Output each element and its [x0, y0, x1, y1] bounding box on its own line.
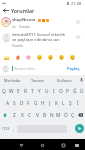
staticText: Yanıtla: [12, 43, 23, 48]
staticText: O: [59, 88, 63, 95]
staticText: K: [55, 100, 58, 107]
button[interactable]: Back: [16, 140, 26, 150]
button[interactable]: Y: [36, 85, 43, 97]
button[interactable]: Profile photo: [1, 17, 11, 27]
staticText: .: [69, 126, 71, 132]
staticText: ?123: [2, 126, 10, 131]
button[interactable]: Profile photo: [2, 65, 9, 72]
staticText: Q: [2, 88, 6, 95]
button[interactable]: O: [57, 85, 64, 97]
button[interactable]: D: [18, 97, 25, 109]
staticText: Ö: [64, 112, 68, 119]
button[interactable]: C: [26, 109, 34, 121]
button[interactable]: Ğ: [71, 85, 78, 97]
button[interactable]: Ş: [67, 97, 74, 109]
staticText: Yorumlar: [11, 7, 35, 14]
staticText: S: [13, 100, 16, 107]
staticText: C: [28, 112, 32, 119]
button[interactable]: Hide keyboard: [73, 141, 81, 149]
button[interactable]: Shift: [0, 109, 10, 121]
staticText: F: [27, 100, 30, 107]
button[interactable]: P: [64, 85, 71, 97]
button[interactable]: X: [18, 109, 26, 121]
button[interactable]: Quick reaction: [23, 53, 34, 62]
button[interactable]: I: [50, 85, 57, 97]
staticText: Ğ: [73, 88, 77, 95]
staticText: Ş: [69, 100, 72, 107]
button[interactable]: Quick reaction: [1, 53, 12, 62]
staticText: V: [36, 112, 39, 119]
button[interactable]: Home: [37, 140, 47, 150]
staticText: ,: [13, 126, 15, 132]
button[interactable]: Recent apps: [58, 140, 68, 150]
button[interactable]: Ç: [69, 109, 76, 121]
button[interactable]: Kullanıcı: [51, 75, 77, 85]
button[interactable]: Quick reaction: [34, 53, 45, 62]
staticText: W: [9, 88, 14, 95]
button[interactable]: ?123: [0, 121, 11, 136]
button[interactable]: Paylaş: [64, 64, 83, 73]
staticText: M: [56, 112, 61, 119]
button[interactable]: B: [41, 109, 48, 121]
button[interactable]: S: [11, 97, 18, 109]
button[interactable]: R: [22, 85, 29, 97]
button[interactable]: J: [46, 97, 53, 109]
staticText: T: [31, 88, 34, 95]
button[interactable]: Quick reaction: [45, 53, 56, 62]
staticText: J: [49, 100, 51, 107]
button[interactable]: A: [4, 97, 11, 109]
staticText: Y: [38, 88, 41, 95]
staticText: A: [6, 100, 10, 107]
button[interactable]: Quick reaction: [67, 53, 78, 62]
staticText: H: [41, 100, 45, 107]
button[interactable]: Backspace: [76, 109, 85, 121]
button[interactable]: Send: [73, 121, 85, 136]
button[interactable]: Voice input: [77, 75, 85, 85]
button[interactable]: Like: [75, 19, 81, 25]
button[interactable]: N: [48, 109, 55, 121]
button[interactable]: Tamam: [25, 75, 51, 85]
staticText: İ: [77, 100, 79, 107]
button[interactable]: V: [34, 109, 41, 121]
staticText: G: [34, 100, 38, 107]
staticText: Ç: [71, 112, 75, 119]
button[interactable]: Merhaba: [0, 75, 25, 85]
button[interactable]: G: [32, 97, 39, 109]
button[interactable]: Profile photo: [2, 33, 11, 42]
staticText: Paylaş: [67, 66, 80, 71]
button[interactable]: L: [60, 97, 67, 109]
staticText: denizbt8911 Sonsuf etkinlik ve paylaşın …: [12, 32, 70, 42]
staticText: U: [45, 88, 49, 95]
staticText: Ü: [80, 88, 84, 95]
button[interactable]: T: [29, 85, 36, 97]
button[interactable]: F: [25, 97, 32, 109]
staticText: shopNicoor: [12, 17, 36, 23]
button[interactable]: E: [15, 85, 22, 97]
button[interactable]: H: [39, 97, 46, 109]
staticText: I: [53, 88, 55, 95]
button[interactable]: Quick reaction: [12, 53, 23, 62]
staticText: Tamam: [31, 78, 45, 83]
staticText: 21:08: [71, 1, 82, 6]
button[interactable]: Ü: [78, 85, 85, 97]
button[interactable]: Quick reaction: [56, 53, 67, 62]
staticText: R: [24, 88, 27, 95]
staticText: N: [50, 112, 54, 119]
staticText: Kullanıcı: [57, 78, 72, 83]
staticText: Z: [13, 112, 16, 119]
button[interactable]: Back: [0, 6, 11, 15]
button[interactable]: W: [8, 85, 15, 97]
button[interactable]: Comma: [11, 121, 17, 136]
button[interactable]: Q: [0, 85, 8, 97]
button[interactable]: Ö: [62, 109, 69, 121]
staticText: B: [43, 112, 47, 119]
button[interactable]: M: [55, 109, 62, 121]
button[interactable]: K: [53, 97, 60, 109]
button[interactable]: İ: [74, 97, 81, 109]
staticText: E: [17, 88, 20, 95]
button[interactable]: Period: [67, 121, 73, 136]
button[interactable]: Like: [75, 34, 81, 40]
button[interactable]: U: [43, 85, 50, 97]
button[interactable]: Z: [10, 109, 18, 121]
